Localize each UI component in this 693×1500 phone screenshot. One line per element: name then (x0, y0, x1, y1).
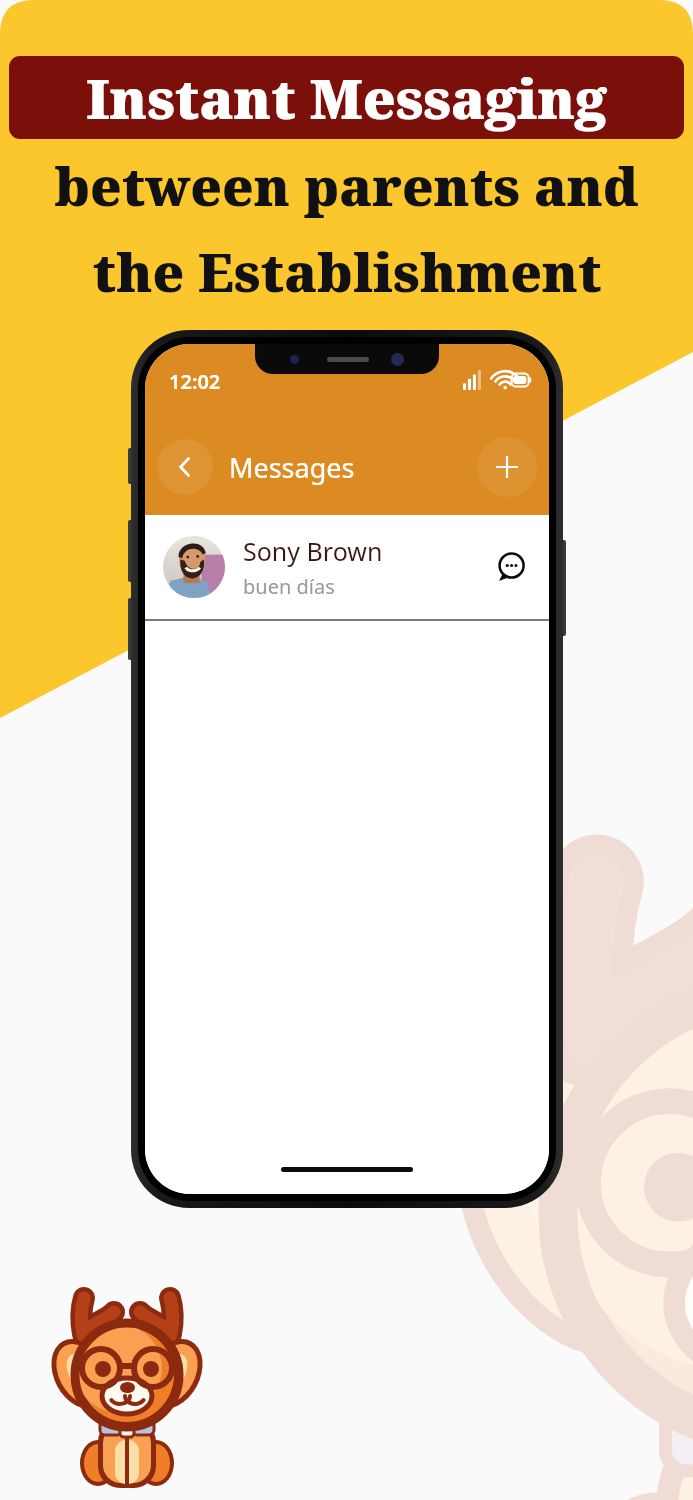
staticText: between parents and (54, 149, 639, 221)
button[interactable]: Sony Brown (145, 515, 549, 619)
button[interactable]: New message (477, 437, 537, 497)
staticText: Messages (229, 449, 355, 486)
staticText: Sony Brown (243, 534, 383, 568)
staticText: the Establishment (92, 235, 602, 307)
staticText: buen días (243, 573, 335, 600)
button[interactable]: Back (157, 439, 213, 495)
staticText: 12:02 (169, 368, 221, 395)
staticText: Instant Messaging (86, 60, 607, 135)
button[interactable]: Open chat (491, 547, 531, 587)
